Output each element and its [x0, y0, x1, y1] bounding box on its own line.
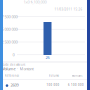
staticText: Montant — [71, 74, 82, 77]
staticText: 1x0 $,100,000 — [23, 0, 46, 5]
staticText: Liste des valeurs — [3, 63, 25, 66]
staticText: 7 500 000 — [2, 14, 18, 19]
staticText: Volume — [2, 66, 15, 71]
staticText: 26 — [45, 55, 49, 60]
staticText: Référence — [4, 74, 19, 77]
staticText: 11/03/2011 15:26 — [54, 8, 82, 11]
staticText: 0 — [12, 52, 14, 57]
staticText: 2609 — [10, 82, 18, 88]
button[interactable]: Volume — [2, 66, 33, 71]
staticText: · — [17, 66, 18, 71]
staticText: 100 000 — [46, 83, 59, 87]
staticText: 6 100 000 — [68, 83, 84, 87]
staticText: Montant — [19, 66, 33, 71]
staticText: 5 000 000 — [2, 27, 18, 32]
staticText: Volume — [48, 74, 59, 77]
staticText: 2 500 000 — [2, 39, 18, 45]
